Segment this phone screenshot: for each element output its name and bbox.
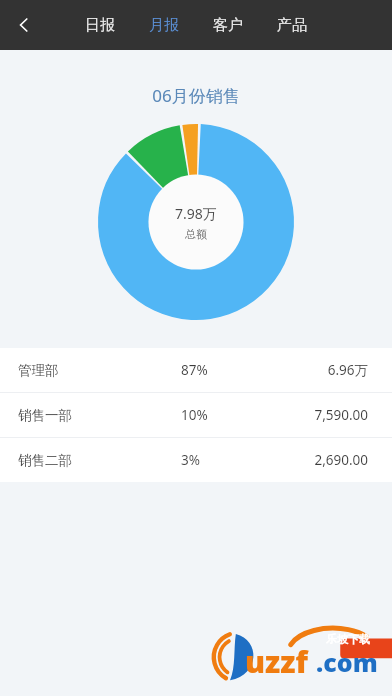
staticText: uzzf [245,641,308,682]
staticText: 2,690.00 [276,451,368,469]
staticText: 月报 [149,16,179,35]
staticText: 3% [181,451,276,469]
staticText: 6.96万 [276,361,368,379]
staticText: 7,590.00 [276,406,368,424]
staticText: 总额 [185,227,207,241]
staticText: 日报 [85,16,115,35]
staticText: 乐坡下载 [326,632,370,646]
button[interactable]: 销售二部 [0,438,392,482]
staticText: 销售一部 [18,407,181,424]
staticText: 06月份销售 [0,84,392,107]
button[interactable]: 销售一部 [0,393,392,437]
staticText: 10% [181,406,276,424]
staticText: 销售二部 [18,452,181,469]
staticText: 87% [181,361,276,379]
staticText: 产品 [277,16,307,35]
button[interactable]: Back [0,1,48,49]
button[interactable]: 客户 [196,0,260,50]
button[interactable]: 产品 [260,0,324,50]
staticText: .com [316,645,378,679]
button[interactable]: 月报 [132,0,196,50]
button[interactable]: 管理部 [0,348,392,392]
button[interactable]: 日报 [68,0,132,50]
staticText: 7.98万 [175,204,217,223]
staticText: 管理部 [18,362,181,379]
staticText: 客户 [213,16,243,35]
